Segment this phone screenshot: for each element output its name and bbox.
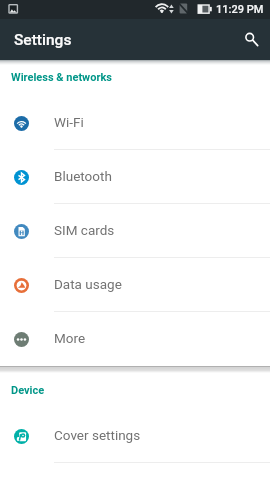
button[interactable]: Search [230,19,270,60]
button[interactable]: Wi-Fi [0,96,270,150]
button[interactable]: More [0,312,270,366]
staticText: Settings [14,31,72,49]
staticText: Wi-Fi [54,114,84,130]
staticText: SIM cards [54,222,115,238]
button[interactable]: SIM cards [0,204,270,258]
button[interactable]: Bluetooth [0,150,270,204]
staticText: Bluetooth [54,168,112,184]
staticText: Cover settings [54,427,141,443]
staticText: Data usage [54,276,122,292]
staticText: 11:29 PM [216,3,264,16]
staticText: Wireless & networks [11,71,112,84]
staticText: Device [11,384,45,397]
button[interactable]: Cover settings [0,409,270,463]
button[interactable]: Data usage [0,258,270,312]
staticText: More [54,330,86,346]
